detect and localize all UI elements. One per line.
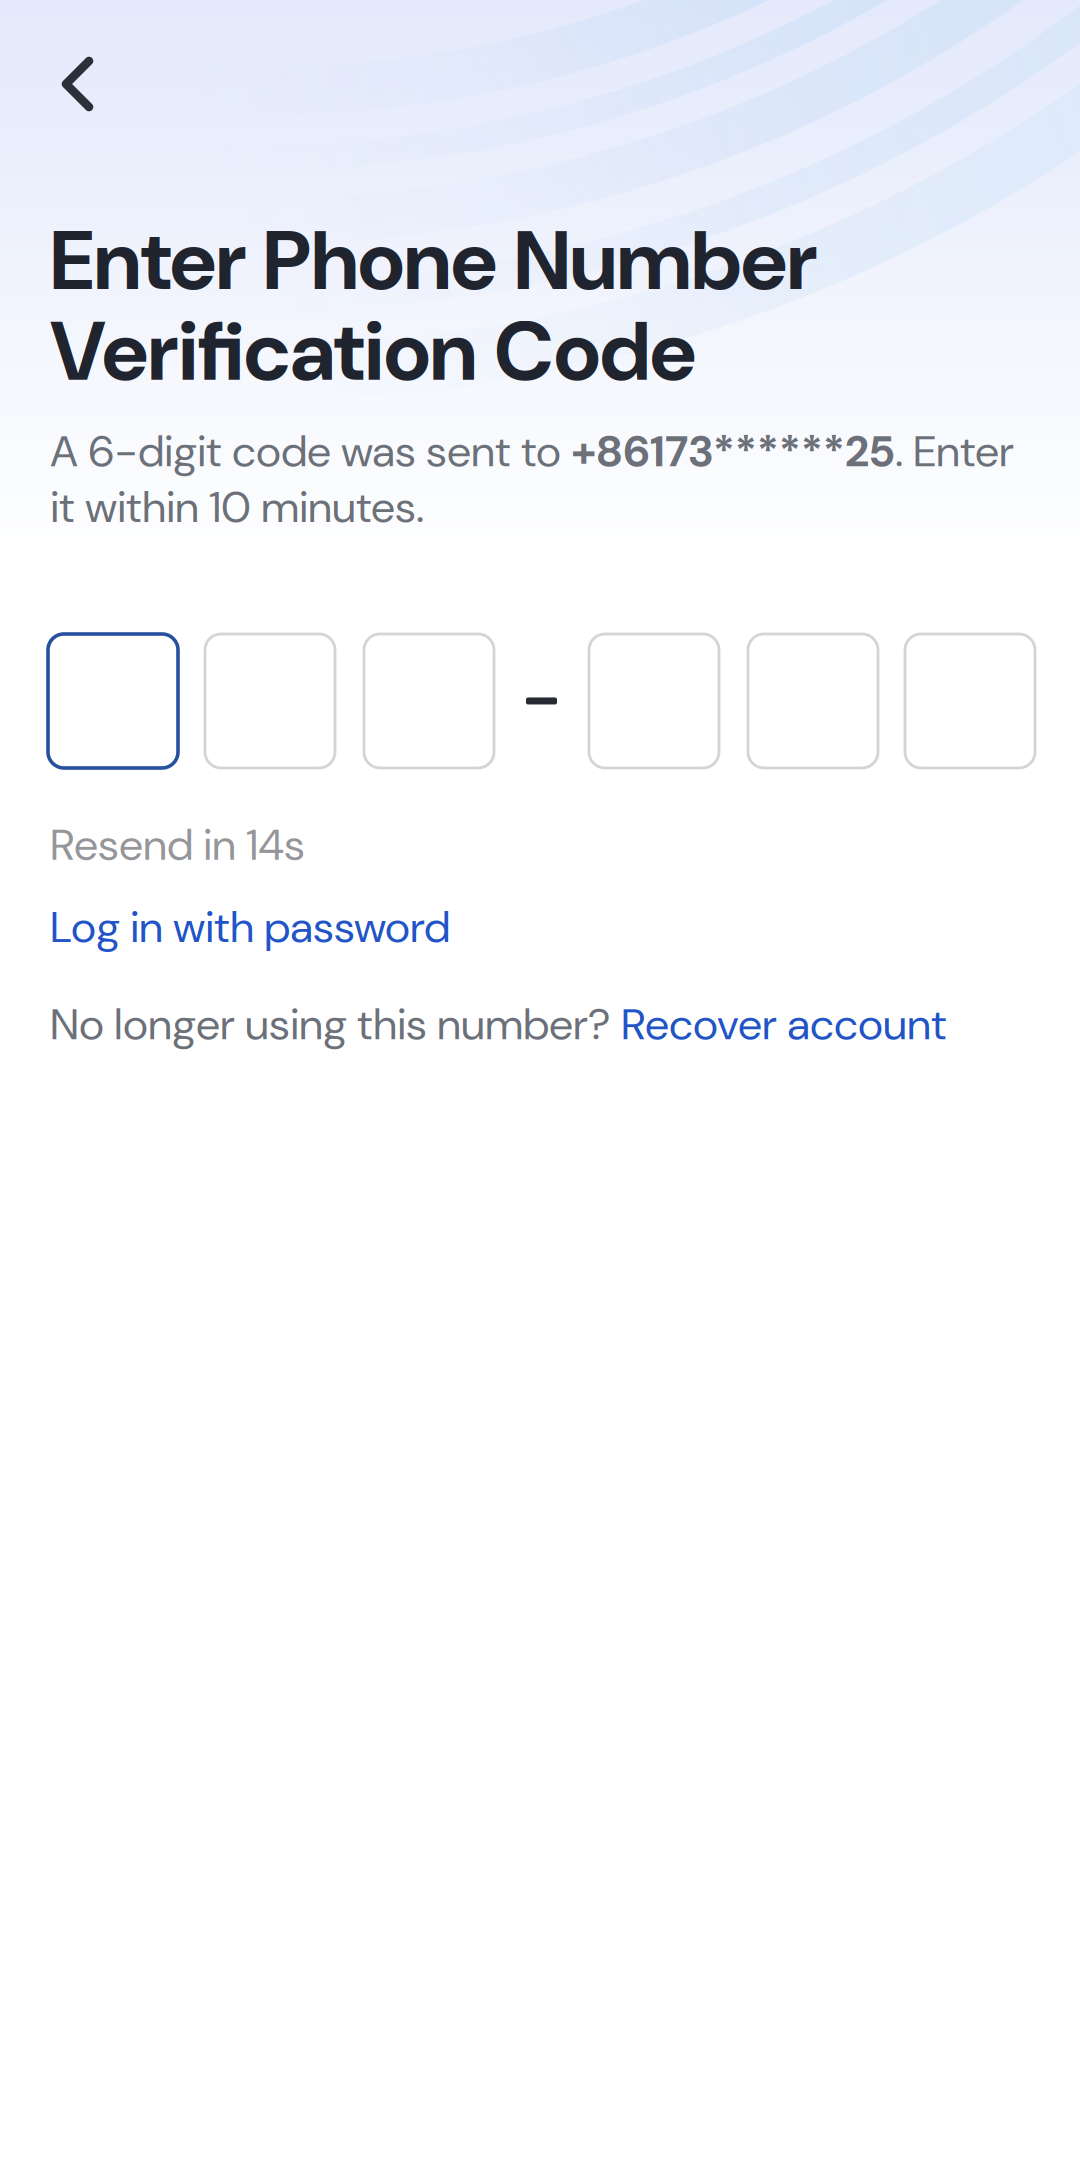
staticText: Log in with password [50, 898, 450, 956]
staticText: Recover account [621, 996, 947, 1053]
button[interactable]: Recover account [621, 996, 947, 1053]
staticText: Resend in 14s [50, 816, 305, 873]
staticText: Enter Phone Number [50, 207, 817, 315]
staticText: A 6-digit code was sent to +86173******2… [50, 423, 1014, 535]
button[interactable]: Log in with password [0, 898, 450, 956]
button[interactable]: Back [0, 50, 125, 118]
staticText: Verification Code [50, 298, 696, 405]
staticText: No longer using this number? [50, 996, 621, 1053]
